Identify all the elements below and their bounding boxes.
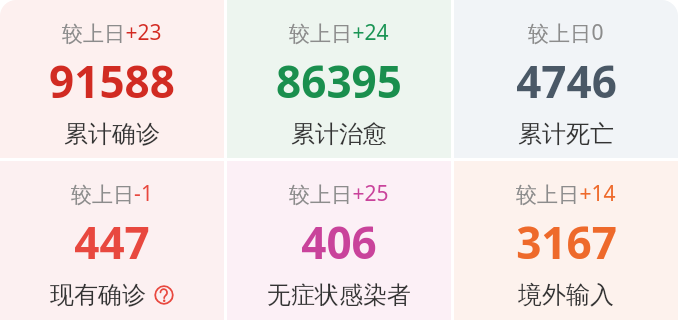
- button[interactable]: 较上日: [454, 0, 678, 158]
- button[interactable]: 说明: [153, 284, 175, 306]
- button[interactable]: 较上日: [0, 0, 224, 158]
- staticText: -1: [134, 179, 153, 208]
- staticText: 较上日: [289, 182, 352, 208]
- staticText: 447: [74, 212, 150, 272]
- button[interactable]: 较上日: [227, 0, 451, 158]
- staticText: 较上日: [516, 182, 579, 208]
- staticText: 91588: [49, 51, 175, 111]
- button[interactable]: 较上日: [0, 161, 224, 320]
- staticText: +23: [125, 18, 162, 47]
- staticText: +14: [579, 179, 616, 208]
- staticText: 86395: [276, 51, 402, 111]
- staticText: 0: [591, 18, 604, 47]
- staticText: 无症状感染者: [267, 280, 411, 310]
- staticText: 累计确诊: [64, 119, 160, 149]
- staticText: 3167: [516, 212, 617, 272]
- staticText: 较上日: [289, 21, 352, 47]
- staticText: 较上日: [62, 21, 125, 47]
- staticText: 较上日: [528, 21, 591, 47]
- staticText: +24: [352, 18, 389, 47]
- staticText: 累计死亡: [518, 119, 614, 149]
- button[interactable]: 较上日: [454, 161, 678, 320]
- staticText: 406: [301, 212, 377, 272]
- staticText: 累计治愈: [291, 119, 387, 149]
- staticText: +25: [352, 179, 389, 208]
- staticText: 较上日: [71, 182, 134, 208]
- button[interactable]: 较上日: [227, 161, 451, 320]
- staticText: 现有确诊: [50, 280, 146, 310]
- staticText: 4746: [516, 51, 617, 111]
- staticText: 境外输入: [518, 280, 614, 310]
